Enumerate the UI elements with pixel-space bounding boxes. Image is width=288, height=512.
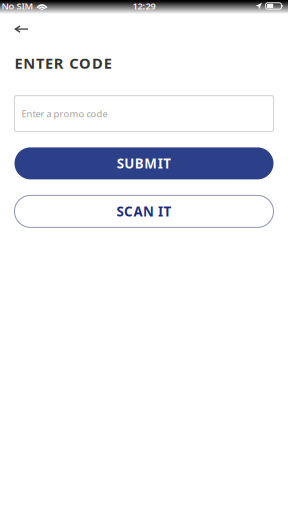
staticText: Enter a promo code: [21, 107, 107, 120]
staticText: No SIM: [1, 0, 33, 12]
staticText: SUBMIT: [117, 154, 171, 172]
button[interactable]: SUBMIT: [14, 147, 273, 179]
button[interactable]: Back: [0, 14, 40, 42]
staticText: ENTER CODE: [14, 53, 112, 73]
staticText: SCAN IT: [116, 202, 171, 220]
button[interactable]: SCAN IT: [14, 195, 273, 227]
staticText: 12:29: [132, 0, 155, 12]
